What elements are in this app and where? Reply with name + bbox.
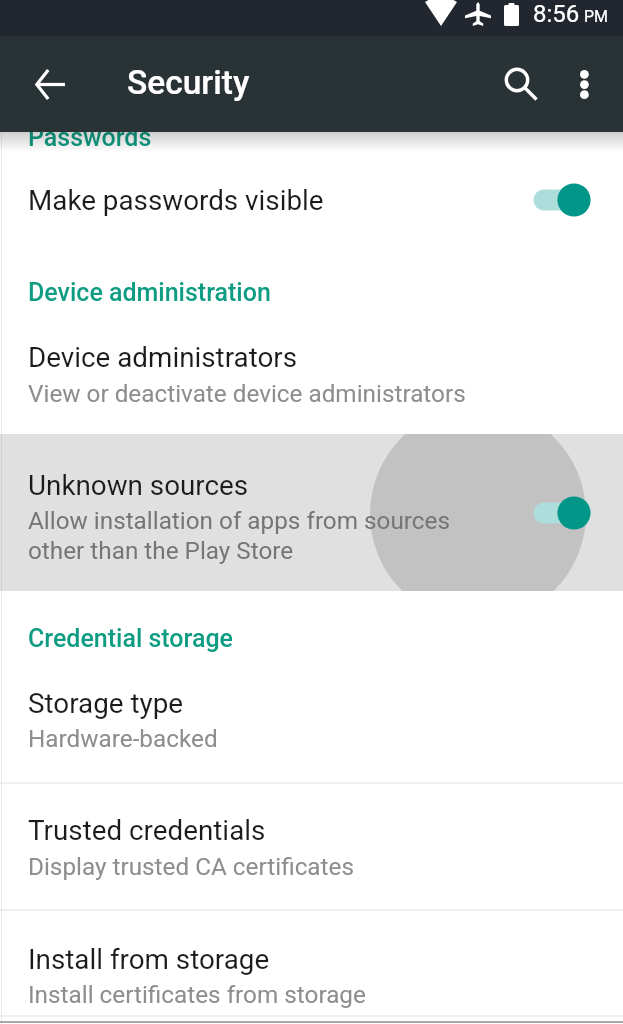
staticText: Device administration	[28, 278, 271, 307]
button[interactable]: Device administrators	[0, 320, 623, 434]
button[interactable]: More options	[558, 55, 614, 111]
staticText: Display trusted CA certificates	[28, 852, 354, 880]
staticText: Storage type	[28, 687, 184, 720]
button[interactable]: Unknown sources	[0, 434, 623, 591]
staticText: Passwords	[28, 123, 152, 152]
staticText: Security	[127, 63, 250, 102]
staticText: Unknown sources	[28, 469, 249, 502]
button[interactable]: Make passwords visible, on	[530, 180, 594, 220]
staticText: View or deactivate device administrators	[28, 379, 466, 407]
button[interactable]: Unknown sources, on	[530, 493, 594, 533]
staticText: other than the Play Store	[28, 536, 294, 564]
button[interactable]: Navigate up	[21, 55, 79, 113]
staticText: Trusted credentials	[28, 814, 266, 847]
button[interactable]: Search	[493, 57, 549, 113]
button[interactable]: Storage type	[0, 668, 623, 782]
staticText: 8:56	[533, 0, 580, 28]
staticText: Make passwords visible	[28, 184, 324, 217]
button[interactable]: Make passwords visible	[0, 165, 623, 262]
staticText: Allow installation of apps from sources	[28, 506, 451, 534]
other: Wi-Fi	[425, 2, 457, 26]
staticText: Device administrators	[28, 341, 298, 374]
other: Battery	[504, 3, 519, 26]
button[interactable]: Trusted credentials	[0, 784, 623, 909]
staticText: Hardware-backed	[28, 724, 218, 752]
staticText: Install certificates from storage	[28, 980, 366, 1008]
other: Airplane mode	[465, 2, 491, 26]
button[interactable]: Install from storage	[0, 911, 623, 1015]
staticText: Install from storage	[28, 943, 270, 976]
staticText: Credential storage	[28, 624, 233, 653]
staticText: PM	[584, 7, 609, 26]
